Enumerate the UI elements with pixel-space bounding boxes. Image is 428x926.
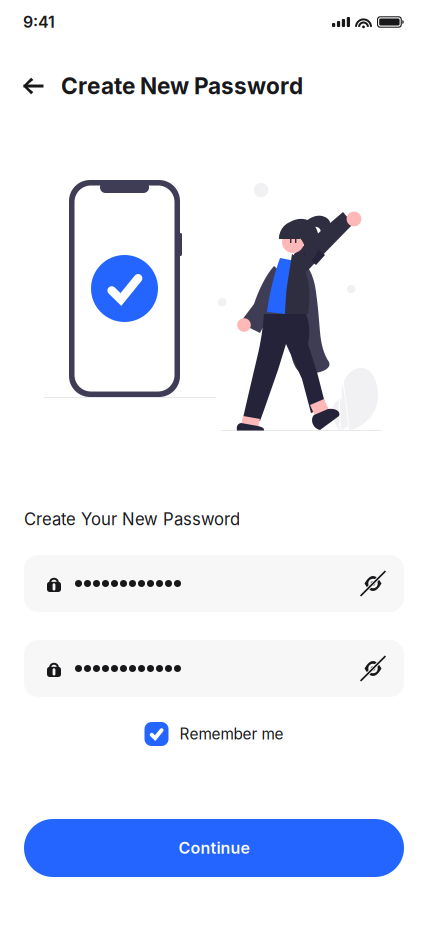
staticText: Continue: [178, 838, 249, 858]
staticText: 9:41: [23, 12, 55, 32]
staticText: Create Your New Password: [24, 509, 240, 529]
button[interactable]: Show password: [353, 646, 393, 690]
button[interactable]: Remember me: [0, 720, 428, 748]
button[interactable]: [24, 640, 404, 697]
button[interactable]: Continue: [24, 819, 404, 877]
button[interactable]: Show password: [353, 561, 393, 605]
button[interactable]: [24, 555, 404, 612]
staticText: Create New Password: [61, 72, 303, 100]
staticText: Remember me: [179, 725, 283, 743]
button[interactable]: Back: [16, 69, 50, 103]
